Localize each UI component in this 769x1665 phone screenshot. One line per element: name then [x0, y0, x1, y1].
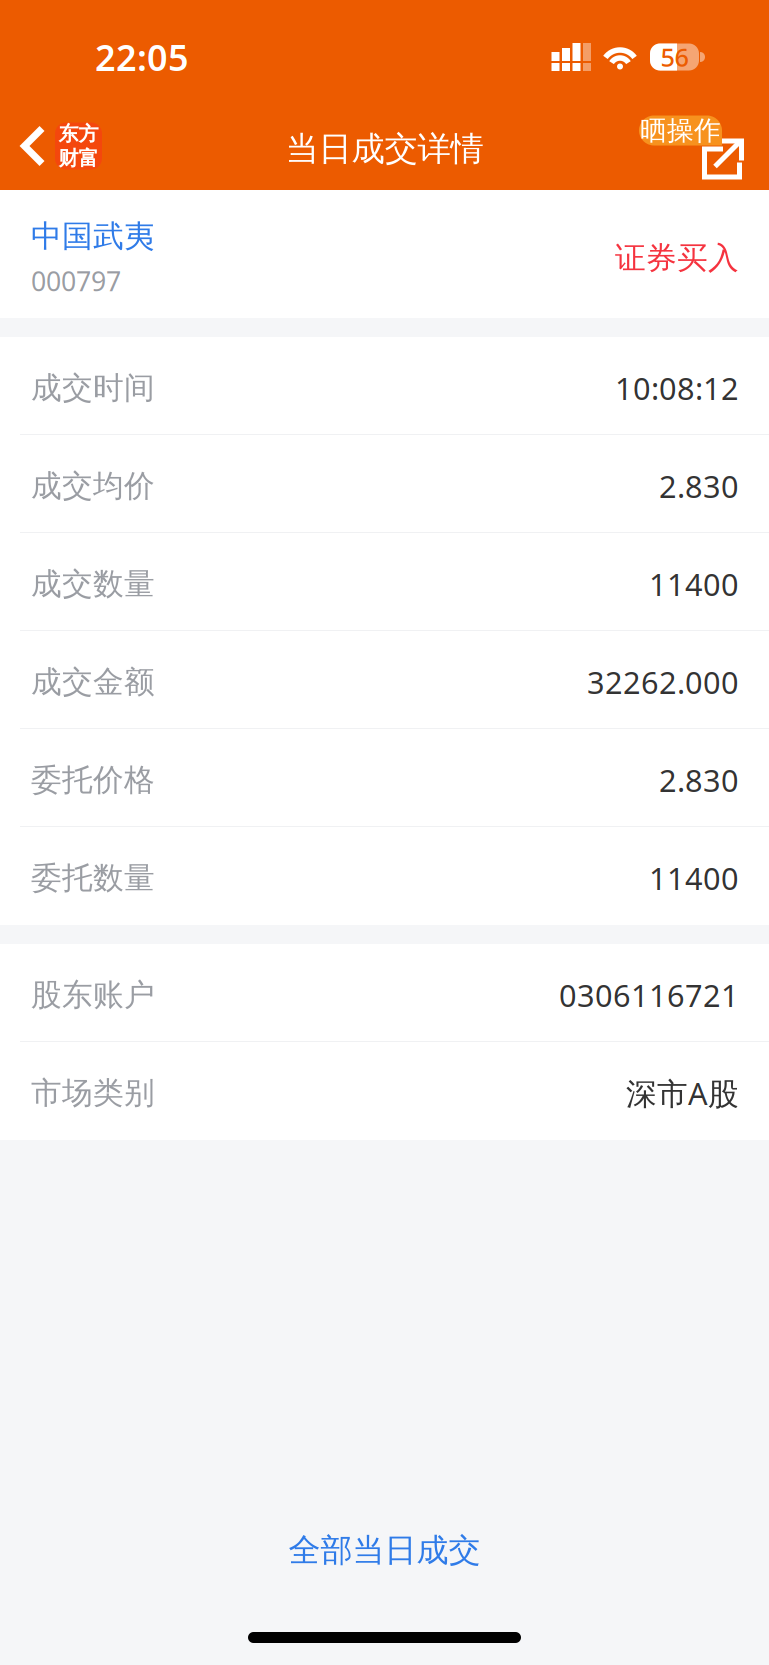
- staticText: 成交数量: [31, 565, 155, 603]
- staticText: 中国武夷: [31, 217, 155, 255]
- staticText: 成交时间: [31, 369, 155, 407]
- staticText: 2.830: [659, 760, 739, 800]
- staticText: 000797: [31, 263, 121, 298]
- button[interactable]: 全部当日成交: [0, 1511, 769, 1590]
- button[interactable]: 返回: [0, 102, 102, 183]
- button[interactable]: 分享: [604, 99, 769, 187]
- staticText: 成交金额: [31, 663, 155, 701]
- staticText: 东方: [58, 121, 98, 146]
- staticText: 股东账户: [31, 976, 155, 1014]
- staticText: 晒操作: [640, 114, 721, 147]
- staticText: 11400: [649, 564, 739, 604]
- staticText: 10:08:12: [615, 368, 739, 408]
- staticText: 2.830: [659, 466, 739, 506]
- staticText: 0306116721: [559, 975, 739, 1015]
- staticText: 全部当日成交: [288, 1531, 480, 1570]
- staticText: 财富: [58, 146, 98, 171]
- staticText: 委托数量: [31, 859, 155, 897]
- staticText: 委托价格: [31, 761, 155, 799]
- staticText: 市场类别: [31, 1074, 155, 1112]
- staticText: 11400: [649, 858, 739, 898]
- staticText: 22:05: [95, 33, 189, 81]
- staticText: 32262.000: [587, 662, 739, 702]
- staticText: 证券买入: [615, 239, 739, 277]
- staticText: 深市A股: [626, 1073, 739, 1113]
- staticText: 当日成交详情: [285, 128, 483, 169]
- staticText: 成交均价: [31, 467, 155, 505]
- staticText: 56: [660, 40, 688, 74]
